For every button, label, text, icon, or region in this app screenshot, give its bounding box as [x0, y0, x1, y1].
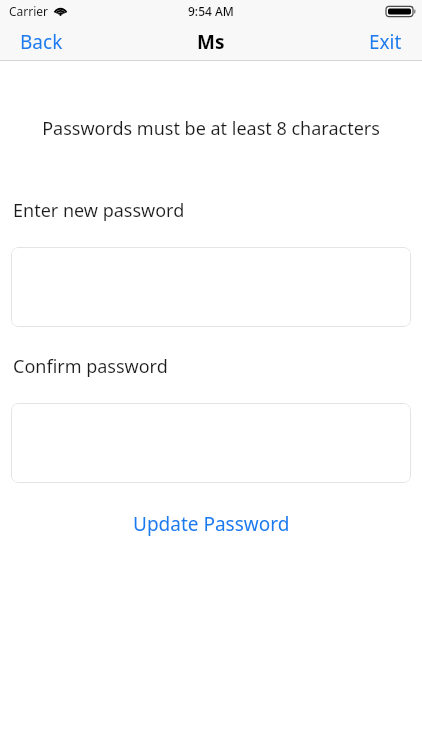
staticText: Carrier — [9, 3, 49, 19]
staticText: Update Password — [133, 511, 290, 537]
staticText: Back — [20, 29, 63, 55]
staticText: 9:54 AM — [188, 3, 234, 19]
staticText: Ms — [197, 29, 225, 55]
button[interactable]: Password input field — [11, 247, 411, 327]
button[interactable]: Exit — [349, 23, 422, 61]
staticText: Enter new password — [13, 198, 185, 223]
button[interactable]: Password input field — [11, 403, 411, 483]
staticText: Exit — [369, 29, 402, 55]
staticText: Passwords must be at least 8 characters — [12, 116, 410, 141]
staticText: Confirm password — [13, 354, 168, 379]
button[interactable]: Update Password — [113, 505, 310, 543]
button[interactable]: Back — [0, 23, 83, 61]
